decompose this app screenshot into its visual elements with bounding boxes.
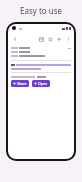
button[interactable]: Archive (37, 35, 45, 43)
staticText: Easy to use (20, 5, 63, 16)
button[interactable]: Reply (55, 35, 63, 43)
button[interactable]: Back (11, 35, 19, 43)
staticText: Open (38, 81, 48, 86)
button[interactable]: Open (32, 80, 50, 87)
staticText: Share (17, 81, 27, 86)
button[interactable]: Share (11, 80, 29, 87)
button[interactable]: More options (64, 35, 72, 43)
button[interactable]: Star (46, 35, 54, 43)
